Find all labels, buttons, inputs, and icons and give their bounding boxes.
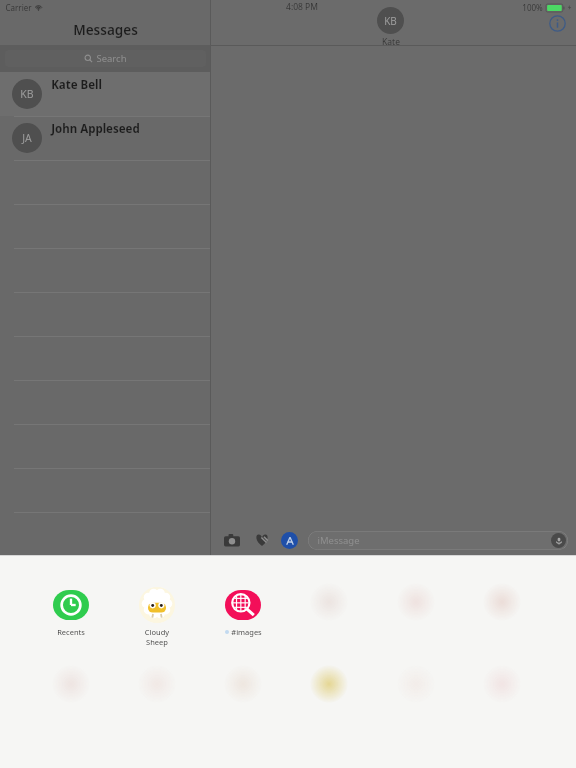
staticText: Recents <box>57 627 85 637</box>
staticText: Cloudy Sheep <box>133 627 181 647</box>
button[interactable] <box>219 668 267 716</box>
staticText: 4:08 PM <box>286 1 318 13</box>
staticText: KB <box>384 14 397 28</box>
button[interactable] <box>478 586 526 634</box>
button[interactable]: #images <box>219 586 267 637</box>
button[interactable]: Cloudy Sheep <box>133 586 181 647</box>
button[interactable]: Search <box>5 50 206 67</box>
staticText: Carrier <box>5 2 32 13</box>
staticText: JA <box>22 131 32 145</box>
button[interactable]: Details <box>547 13 567 33</box>
staticText: Search <box>96 52 127 65</box>
button[interactable]: KB <box>0 72 211 116</box>
staticText: Kate <box>382 36 400 48</box>
button[interactable]: App Store <box>281 532 298 549</box>
button[interactable] <box>305 586 353 634</box>
button[interactable]: Dictation <box>551 533 566 548</box>
button[interactable]: Digital Touch <box>251 529 273 551</box>
button[interactable] <box>305 668 353 716</box>
button[interactable] <box>47 668 95 716</box>
staticText: iMessage <box>317 534 360 547</box>
button[interactable]: KB <box>377 7 404 48</box>
button[interactable] <box>392 586 440 634</box>
button[interactable]: iMessage <box>308 531 568 550</box>
staticText: #images <box>231 627 262 637</box>
button[interactable]: JA <box>0 116 211 160</box>
button[interactable]: Recents <box>47 586 95 637</box>
staticText: John Appleseed <box>51 121 140 137</box>
staticText: KB <box>20 87 34 101</box>
staticText: Kate Bell <box>51 77 102 93</box>
button[interactable]: Camera <box>221 529 243 551</box>
button[interactable] <box>478 668 526 716</box>
staticText: 100% <box>522 2 543 13</box>
button[interactable] <box>133 668 181 716</box>
staticText: Messages <box>73 21 138 39</box>
